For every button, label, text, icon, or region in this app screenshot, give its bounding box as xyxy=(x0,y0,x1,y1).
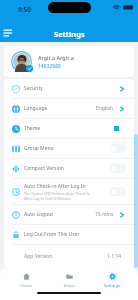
button[interactable]: Group Menu xyxy=(110,144,126,153)
button[interactable]: Menu xyxy=(3,29,13,37)
button[interactable]: App Version xyxy=(4,245,134,267)
staticText: Auto Check-in After Log In xyxy=(24,183,86,190)
button[interactable]: Inbox xyxy=(52,270,86,290)
staticText: Settings xyxy=(104,283,120,289)
button[interactable]: Compact Version xyxy=(4,159,134,178)
staticText: Theme xyxy=(24,125,41,132)
button[interactable]: Settings xyxy=(95,270,129,290)
button[interactable]: Compact Version xyxy=(110,164,126,173)
button[interactable]: Language xyxy=(118,105,126,113)
button[interactable]: Auto Logout xyxy=(118,211,126,219)
button[interactable]: Security xyxy=(4,79,134,98)
staticText: The System Will Perform Auto Check-In Af… xyxy=(24,191,90,201)
button[interactable]: Theme xyxy=(4,119,134,138)
staticText: Language xyxy=(24,105,48,112)
staticText: 9:50 xyxy=(18,5,31,14)
staticText: App Version xyxy=(24,253,53,260)
staticText: 1.1.14 xyxy=(107,253,122,260)
staticText: Log Out From This User xyxy=(24,231,80,238)
staticText: English xyxy=(96,105,114,112)
staticText: 14632988 xyxy=(38,63,61,70)
button[interactable]: Auto Logout xyxy=(4,205,134,224)
staticText: Compact Version xyxy=(24,165,64,172)
button[interactable]: Security xyxy=(118,85,126,93)
staticText: Home xyxy=(20,283,32,289)
button[interactable]: Home xyxy=(9,270,43,290)
button[interactable]: Group Menu xyxy=(4,139,134,158)
staticText: Security xyxy=(24,85,43,92)
staticText: Inbox xyxy=(63,283,75,289)
button[interactable]: Language xyxy=(4,99,134,118)
staticText: Argit.a Argit.a xyxy=(38,54,74,61)
staticText: 15 mins xyxy=(95,211,114,218)
button[interactable]: Log Out From This User xyxy=(4,225,134,244)
staticText: Auto Logout xyxy=(24,211,54,218)
button[interactable]: Auto Check-in After Log In xyxy=(4,179,134,204)
button[interactable]: Auto Check-in After Log In xyxy=(110,187,126,196)
staticText: Group Menu xyxy=(24,145,54,152)
button[interactable]: Argit.a Argit.a xyxy=(4,46,134,77)
staticText: Settings xyxy=(54,29,85,39)
